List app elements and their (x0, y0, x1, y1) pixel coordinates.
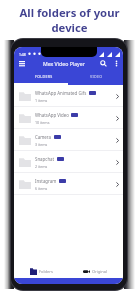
staticText: Original (92, 269, 108, 274)
button[interactable]: Snapchat (14, 151, 123, 173)
staticText: 1:48 (19, 52, 26, 57)
button[interactable]: Camera (14, 129, 123, 151)
staticText: 2 items (35, 164, 48, 169)
staticText: 6 items (35, 186, 48, 191)
staticText: WhatsApp Animated Gifs (35, 90, 87, 96)
staticText: Mex Video Player (43, 60, 85, 67)
button[interactable]: More options (110, 57, 123, 70)
staticText: Camera (35, 134, 52, 140)
staticText: 1 items (35, 98, 48, 103)
button[interactable]: Instagram (14, 173, 123, 195)
button[interactable]: VIDEO (70, 70, 123, 83)
staticText: Folders (39, 269, 53, 274)
staticText: device (51, 20, 88, 35)
staticText: Snapchat (35, 156, 55, 162)
button[interactable]: WhatsApp Video (14, 107, 123, 129)
button[interactable]: Search (97, 57, 110, 70)
staticText: FOLDERS (35, 74, 53, 79)
staticText: VIDEO (90, 74, 103, 79)
button[interactable]: Original (68, 264, 123, 278)
button[interactable]: Menu (14, 57, 30, 70)
button[interactable]: WhatsApp Animated Gifs (14, 85, 123, 107)
staticText: WhatsApp Video (35, 112, 69, 118)
staticText: Instagram (35, 178, 57, 184)
button[interactable]: Folders (14, 264, 68, 278)
staticText: 10 items (35, 120, 50, 125)
staticText: All folders of your (19, 5, 120, 20)
button[interactable]: FOLDERS (17, 70, 70, 83)
staticText: 3 items (35, 142, 48, 147)
